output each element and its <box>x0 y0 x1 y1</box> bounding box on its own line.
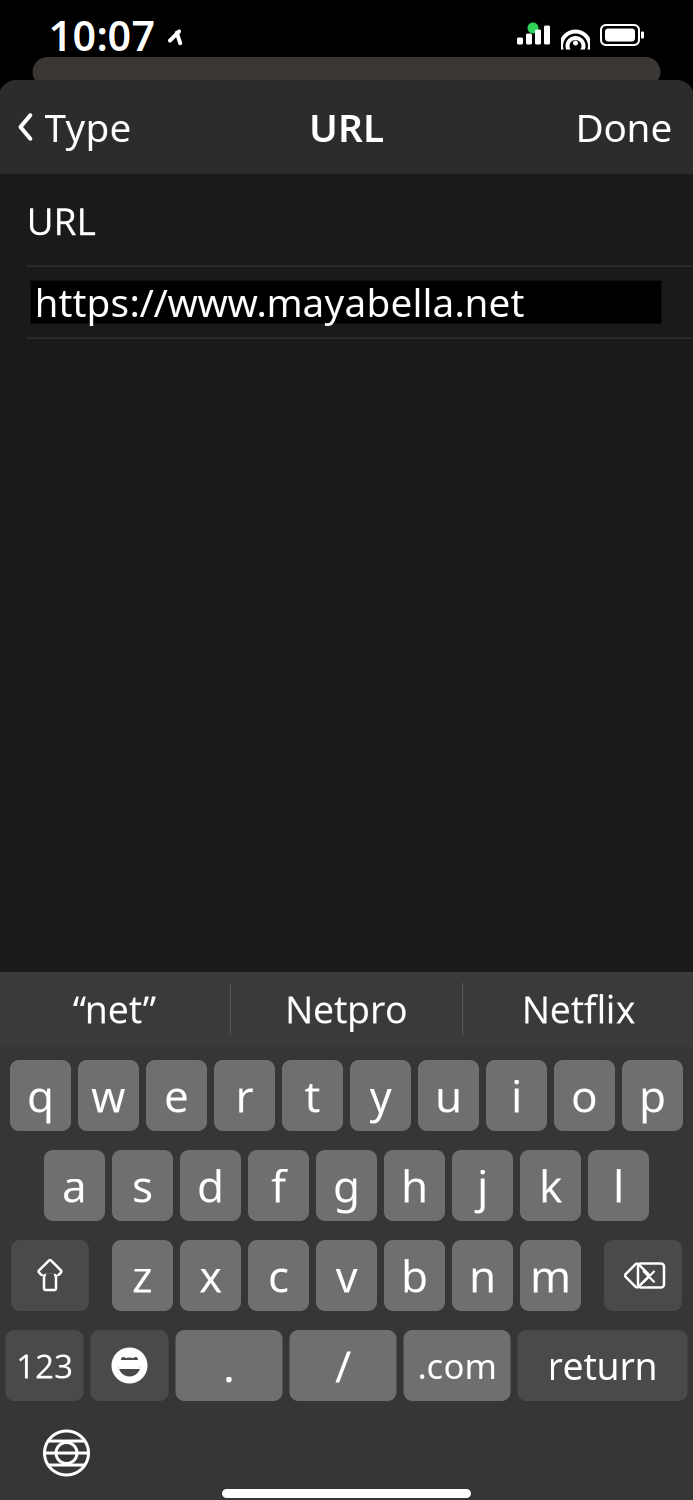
button[interactable]: . <box>175 1330 282 1401</box>
staticText: URL <box>309 101 384 153</box>
staticText: q <box>27 1066 54 1125</box>
staticText: n <box>469 1246 496 1305</box>
staticText: d <box>197 1156 224 1215</box>
staticText: t <box>304 1066 320 1125</box>
button[interactable]: r <box>214 1060 275 1131</box>
button[interactable]: Netpro <box>231 972 462 1046</box>
staticText: i <box>511 1066 522 1125</box>
staticText: h <box>401 1156 428 1215</box>
button[interactable]: j <box>452 1150 513 1221</box>
staticText: l <box>613 1156 624 1215</box>
button[interactable]: p <box>622 1060 683 1131</box>
button[interactable]: / <box>289 1330 396 1401</box>
button[interactable]: s <box>112 1150 173 1221</box>
staticText: r <box>235 1066 253 1125</box>
staticText: URL <box>26 196 96 246</box>
staticText: y <box>369 1066 391 1125</box>
button[interactable]: Next keyboard <box>38 1425 94 1481</box>
button[interactable]: v <box>316 1240 377 1311</box>
button[interactable]: 123 <box>5 1330 83 1401</box>
button[interactable]: k <box>520 1150 581 1221</box>
staticText: j <box>477 1156 488 1215</box>
button[interactable]: d <box>180 1150 241 1221</box>
button[interactable]: l <box>588 1150 649 1221</box>
staticText: s <box>132 1156 153 1215</box>
staticText: v <box>335 1246 357 1305</box>
button[interactable]: https://www.mayabella.net <box>0 267 693 338</box>
staticText: x <box>199 1246 222 1305</box>
staticText: c <box>268 1246 289 1305</box>
button[interactable]: u <box>418 1060 479 1131</box>
staticText: / <box>335 1336 351 1395</box>
button[interactable]: Delete <box>604 1240 682 1311</box>
staticText: Type <box>44 101 131 153</box>
button[interactable]: h <box>384 1150 445 1221</box>
staticText: g <box>333 1156 360 1215</box>
staticText: 10:07 <box>48 8 155 62</box>
button[interactable]: w <box>78 1060 139 1131</box>
button[interactable]: n <box>452 1240 513 1311</box>
button[interactable]: o <box>554 1060 615 1131</box>
button[interactable]: i <box>486 1060 547 1131</box>
button[interactable]: Shift <box>11 1240 89 1311</box>
button[interactable]: return <box>517 1330 687 1401</box>
button[interactable]: .com <box>403 1330 510 1401</box>
staticText: https://www.mayabella.net <box>34 276 524 328</box>
button[interactable]: Done <box>575 89 693 165</box>
staticText: f <box>271 1156 286 1215</box>
staticText: Netpro <box>285 984 408 1034</box>
button[interactable]: t <box>282 1060 343 1131</box>
staticText: × <box>640 1256 657 1295</box>
staticText: b <box>401 1246 428 1305</box>
button[interactable]: f <box>248 1150 309 1221</box>
button[interactable]: g <box>316 1150 377 1221</box>
staticText: o <box>571 1066 598 1125</box>
staticText: . <box>223 1336 235 1395</box>
staticText: Netflix <box>522 984 636 1034</box>
staticText: 123 <box>16 1343 73 1388</box>
button[interactable]: c <box>248 1240 309 1311</box>
staticText: p <box>639 1066 666 1125</box>
button[interactable]: Emoji <box>90 1330 168 1401</box>
button[interactable]: e <box>146 1060 207 1131</box>
staticText: .com <box>417 1342 496 1388</box>
staticText: w <box>91 1066 126 1125</box>
button[interactable]: y <box>350 1060 411 1131</box>
button[interactable]: m <box>520 1240 581 1311</box>
staticText: k <box>539 1156 562 1215</box>
staticText: Done <box>575 101 672 153</box>
button[interactable]: a <box>44 1150 105 1221</box>
staticText: return <box>547 1341 657 1390</box>
staticText: “net” <box>73 984 156 1034</box>
button[interactable]: x <box>180 1240 241 1311</box>
staticText: u <box>435 1066 462 1125</box>
button[interactable]: z <box>112 1240 173 1311</box>
staticText: z <box>132 1246 153 1305</box>
staticText: e <box>164 1066 189 1125</box>
staticText: m <box>530 1246 571 1305</box>
button[interactable]: q <box>10 1060 71 1131</box>
button[interactable]: “net” <box>0 972 230 1046</box>
button[interactable]: b <box>384 1240 445 1311</box>
button[interactable]: Netflix <box>463 972 693 1046</box>
button[interactable]: Type <box>0 89 131 165</box>
staticText: a <box>62 1156 87 1215</box>
